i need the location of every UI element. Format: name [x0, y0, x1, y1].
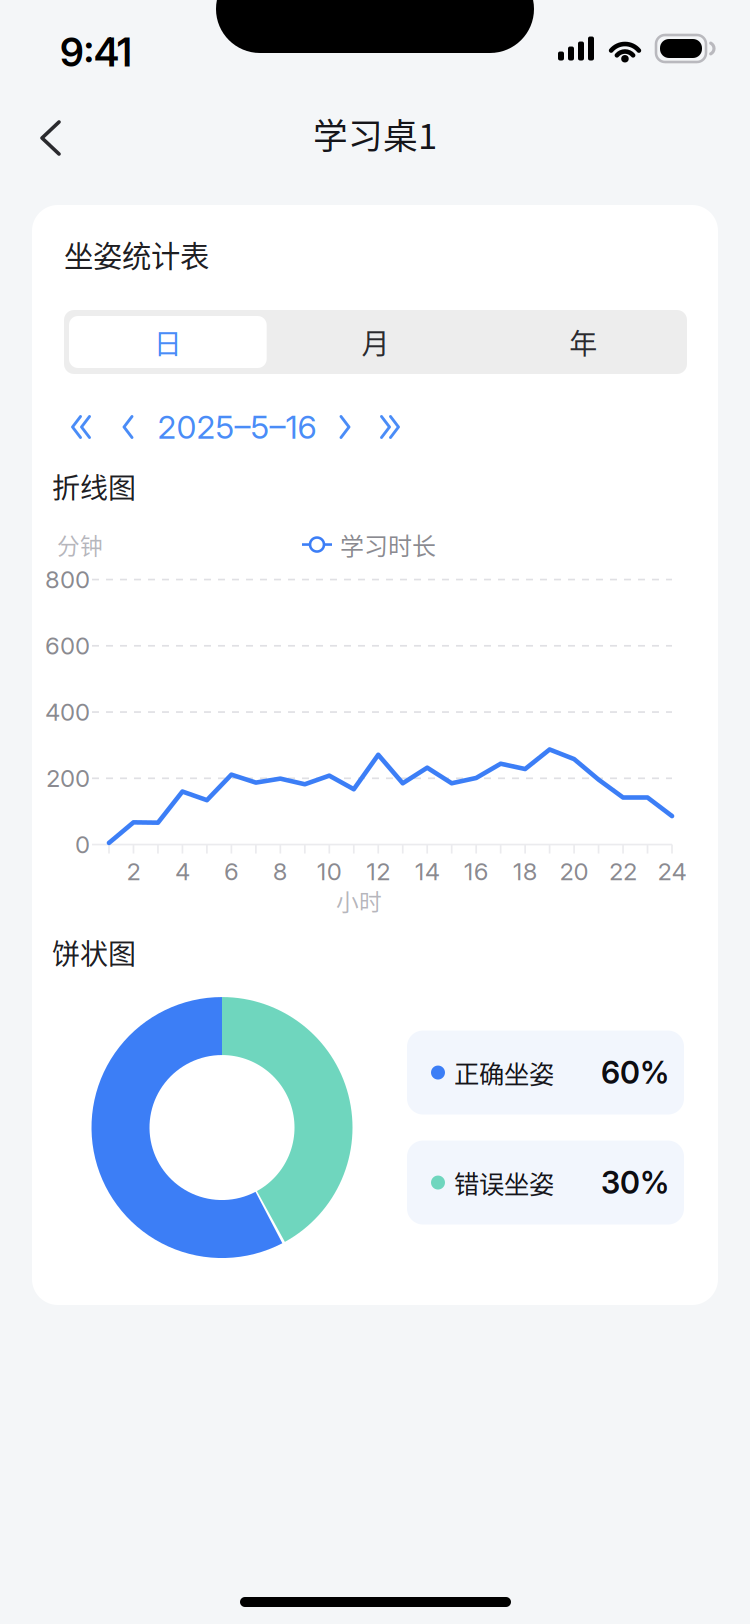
button[interactable]: Next day [323, 404, 367, 450]
button[interactable]: Previous year [56, 404, 106, 450]
staticText: 60% [601, 1054, 669, 1091]
staticText: 12 [366, 857, 390, 886]
button[interactable]: Next year [365, 404, 415, 450]
button[interactable]: 2025–5–16 [149, 404, 325, 450]
staticText: 坐姿统计表 [64, 233, 209, 275]
staticText: 4 [175, 857, 190, 886]
staticText: 9:41 [60, 29, 132, 76]
staticText: 日 [154, 322, 182, 362]
staticText: 2025–5–16 [157, 408, 316, 446]
button[interactable]: Back [15, 100, 87, 176]
staticText: 年 [569, 322, 597, 362]
staticText: 30% [601, 1164, 669, 1201]
staticText: 2 [126, 857, 140, 886]
button[interactable]: 日 [64, 310, 272, 374]
staticText: 18 [513, 857, 538, 886]
staticText: 折线图 [52, 466, 136, 506]
staticText: 24 [657, 857, 686, 886]
staticText: 22 [609, 857, 637, 886]
staticText: 800 [45, 565, 90, 594]
button[interactable]: 正确坐姿 [407, 1030, 684, 1114]
staticText: 16 [464, 857, 489, 886]
staticText: 学习桌1 [313, 109, 437, 159]
staticText: 分钟 [57, 528, 103, 561]
button[interactable]: 年 [479, 310, 687, 374]
staticText: 错误坐姿 [454, 1164, 554, 1201]
staticText: 小时 [336, 884, 382, 917]
staticText: 0 [75, 830, 90, 859]
button[interactable]: Previous day [106, 404, 150, 450]
button[interactable]: 月 [272, 310, 479, 374]
staticText: 10 [317, 857, 342, 886]
staticText: 学习时长 [340, 527, 436, 562]
button[interactable]: 错误坐姿 [407, 1140, 684, 1224]
staticText: 月 [361, 322, 389, 362]
staticText: 400 [45, 697, 90, 726]
staticText: 20 [560, 857, 589, 886]
staticText: 200 [46, 764, 90, 793]
staticText: 正确坐姿 [454, 1054, 554, 1091]
staticText: 饼状图 [52, 932, 136, 972]
staticText: 600 [45, 631, 90, 660]
staticText: 14 [415, 857, 440, 886]
staticText: 6 [224, 857, 239, 886]
staticText: 8 [273, 857, 288, 886]
